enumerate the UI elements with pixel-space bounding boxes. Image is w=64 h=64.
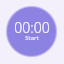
button[interactable]: Start timer <box>6 6 58 58</box>
staticText: Start <box>25 34 39 42</box>
staticText: 00:00 <box>14 18 50 37</box>
